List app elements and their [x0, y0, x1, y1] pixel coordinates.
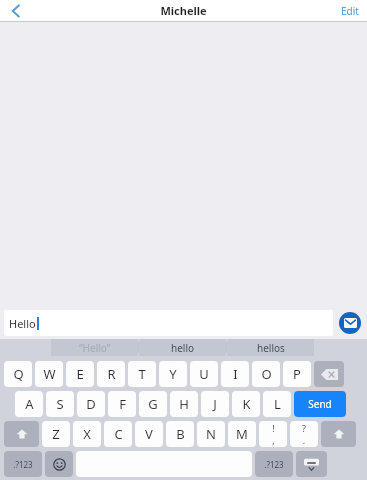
button[interactable]: D	[77, 391, 105, 417]
button[interactable]: Backspace	[314, 361, 344, 387]
staticText: Z	[52, 425, 60, 443]
button[interactable]: Hide keyboard	[296, 451, 327, 477]
button[interactable]: Edit	[341, 4, 359, 18]
button[interactable]: G	[139, 391, 167, 417]
button[interactable]: P	[283, 361, 311, 387]
button[interactable]: U	[190, 361, 218, 387]
button[interactable]: J	[201, 391, 229, 417]
button[interactable]: M	[228, 421, 256, 447]
button[interactable]: X	[73, 421, 101, 447]
staticText: B	[176, 425, 185, 443]
staticText: F	[119, 395, 126, 413]
staticText: hello	[171, 341, 195, 355]
button[interactable]: Z	[42, 421, 70, 447]
staticText: H	[179, 395, 189, 413]
staticText: “Hello”	[79, 341, 111, 355]
button[interactable]: N	[197, 421, 225, 447]
button[interactable]: T	[128, 361, 156, 387]
button[interactable]: Y	[159, 361, 187, 387]
staticText: L	[274, 395, 281, 413]
button[interactable]: .?123	[255, 451, 293, 477]
staticText: hellos	[257, 341, 285, 355]
button[interactable]: H	[170, 391, 198, 417]
staticText: U	[199, 365, 209, 383]
button[interactable]: hello	[139, 339, 226, 356]
button[interactable]: “Hello”	[51, 339, 138, 356]
button[interactable]: Back	[4, 0, 28, 21]
button[interactable]: ? .	[290, 421, 318, 447]
button[interactable]: A	[15, 391, 43, 417]
staticText: M	[236, 425, 248, 443]
staticText: W	[43, 365, 56, 383]
staticText: Michelle	[160, 3, 207, 18]
staticText: G	[148, 395, 158, 413]
button[interactable]: Send message	[339, 312, 361, 334]
staticText: ! ,	[272, 422, 275, 446]
button[interactable]: C	[104, 421, 132, 447]
staticText: ? .	[302, 422, 306, 446]
button[interactable]: Send	[294, 391, 346, 417]
staticText: A	[25, 395, 34, 413]
button[interactable]: W	[35, 361, 63, 387]
button[interactable]: Shift	[4, 421, 39, 447]
staticText: P	[293, 365, 301, 383]
staticText: Y	[169, 365, 177, 383]
staticText: R	[107, 365, 116, 383]
staticText: Edit	[341, 4, 359, 18]
staticText: C	[114, 425, 123, 443]
button[interactable]: V	[135, 421, 163, 447]
button[interactable]: K	[232, 391, 260, 417]
staticText: K	[242, 395, 251, 413]
staticText: I	[233, 365, 238, 383]
button[interactable]: E	[66, 361, 94, 387]
staticText: .?123	[264, 459, 284, 470]
button[interactable]: Emoji	[45, 451, 73, 477]
staticText: V	[145, 425, 153, 443]
button[interactable]: B	[166, 421, 194, 447]
staticText: J	[213, 395, 217, 413]
staticText: S	[56, 395, 64, 413]
staticText: Hello	[9, 316, 36, 331]
staticText: Q	[13, 365, 24, 383]
staticText: N	[206, 425, 216, 443]
button[interactable]: Shift	[321, 421, 356, 447]
staticText: O	[261, 365, 272, 383]
button[interactable]: ! ,	[259, 421, 287, 447]
button[interactable]: F	[108, 391, 136, 417]
button[interactable]: S	[46, 391, 74, 417]
button[interactable]: L	[263, 391, 291, 417]
staticText: T	[138, 365, 146, 383]
button[interactable]: Q	[4, 361, 32, 387]
button[interactable]: hellos	[227, 339, 314, 356]
staticText: X	[83, 425, 91, 443]
button[interactable]: .?123	[4, 451, 42, 477]
button[interactable]: I	[221, 361, 249, 387]
staticText: .?123	[13, 459, 33, 470]
staticText: Send	[308, 397, 332, 411]
staticText: D	[86, 395, 96, 413]
button[interactable]: Hello	[4, 310, 333, 336]
button[interactable]: R	[97, 361, 125, 387]
staticText: E	[76, 365, 84, 383]
button[interactable]: O	[252, 361, 280, 387]
